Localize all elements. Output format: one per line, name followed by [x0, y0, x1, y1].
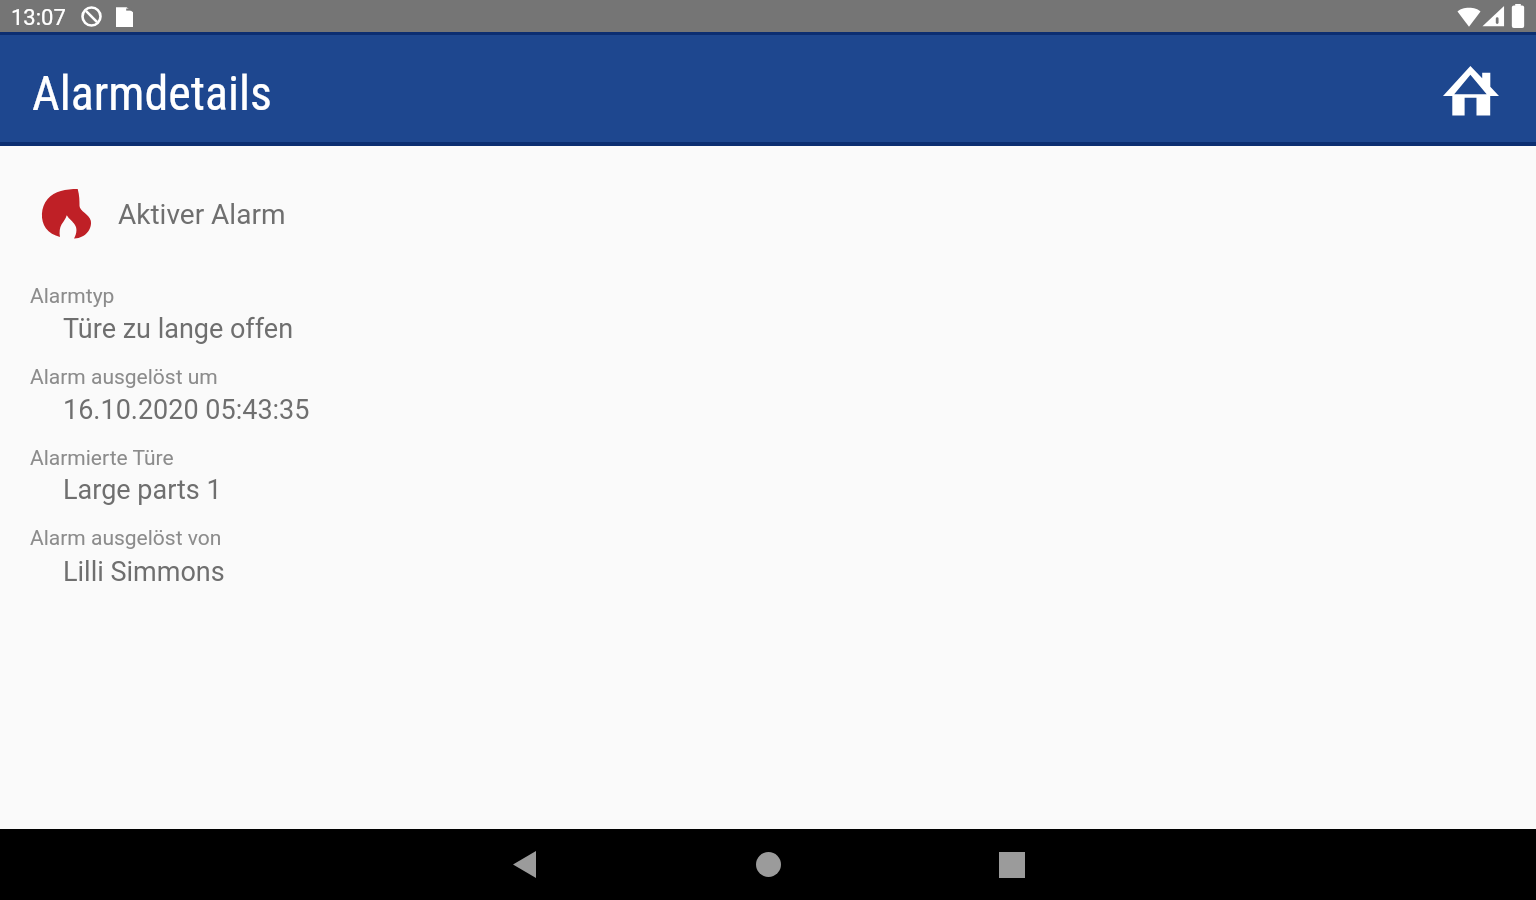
staticText: 16.10.2020 05:43:35: [63, 394, 310, 426]
staticText: Alarmtyp: [30, 284, 115, 309]
button[interactable]: Recent apps: [976, 829, 1048, 900]
staticText: Alarmdetails: [32, 65, 272, 121]
staticText: Türe zu lange offen: [63, 313, 294, 345]
staticText: Alarmierte Türe: [30, 446, 174, 471]
staticText: Alarm ausgelöst um: [30, 365, 218, 390]
staticText: Large parts 1: [63, 474, 222, 506]
button[interactable]: Back: [488, 829, 560, 900]
button[interactable]: Home: [732, 829, 804, 900]
staticText: Aktiver Alarm: [118, 198, 286, 231]
staticText: Alarm ausgelöst von: [30, 526, 222, 551]
staticText: 13:07: [11, 5, 66, 31]
button[interactable]: Home: [1432, 55, 1510, 127]
staticText: Lilli Simmons: [63, 556, 225, 588]
